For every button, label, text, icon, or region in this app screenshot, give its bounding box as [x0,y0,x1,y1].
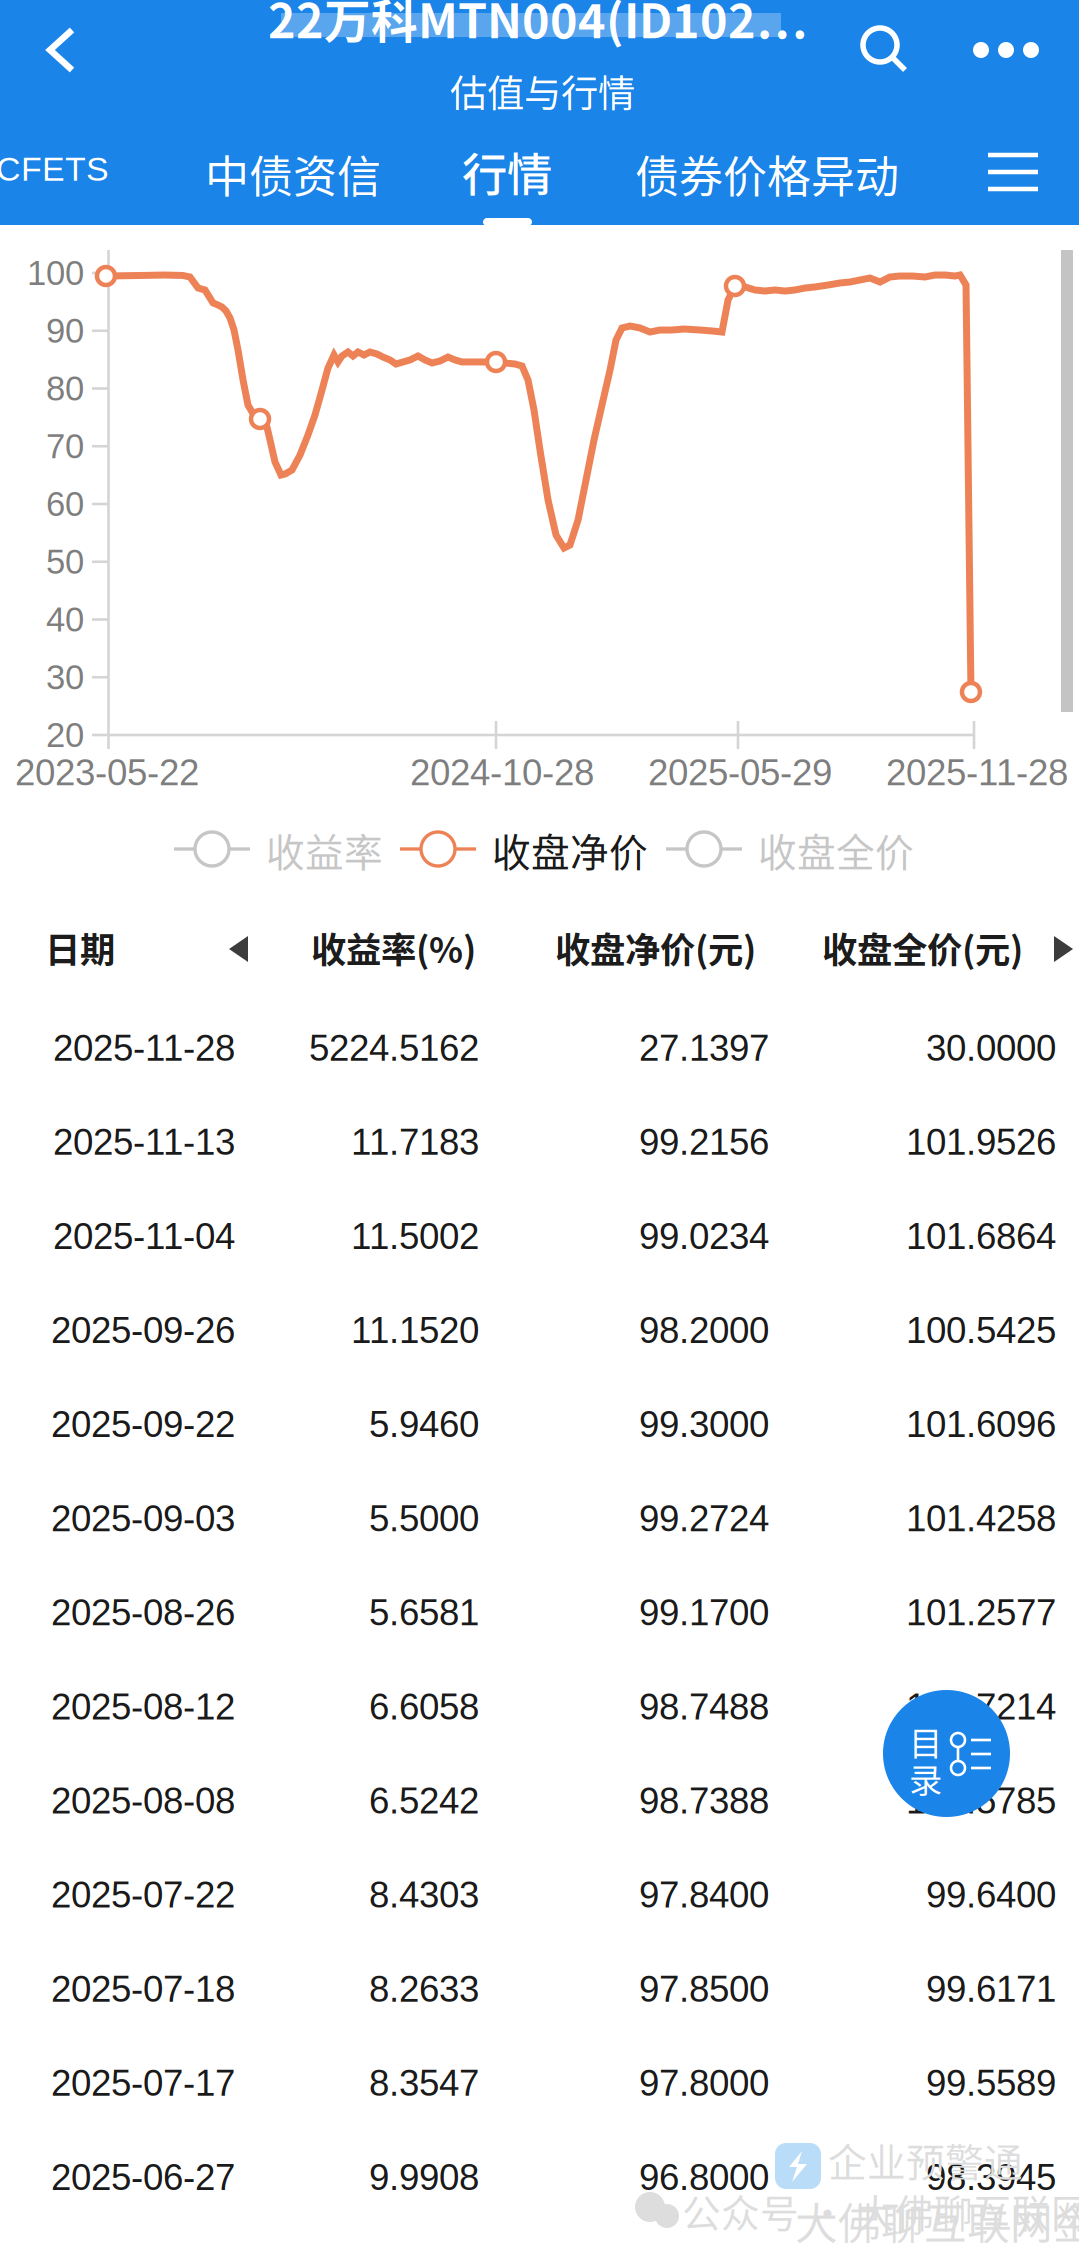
staticText: 2023-05-22 [15,752,199,793]
staticText: 96.8000 [639,2157,769,2198]
staticText: 101.6096 [906,1404,1056,1445]
staticText: 2025-07-17 [51,2063,235,2104]
staticText: 5.5000 [369,1498,479,1539]
staticText: 99.1700 [639,1592,769,1633]
staticText: 99.2156 [639,1122,769,1163]
staticText: 2025-11-13 [53,1122,235,1163]
staticText: 99.3000 [639,1404,769,1445]
staticText: 录 [909,1754,942,1802]
staticText: 收益率(%) [311,922,476,973]
button[interactable]: 行情 [423,136,593,225]
staticText: 20 [46,716,84,754]
staticText: 5.9460 [369,1404,479,1445]
staticText: 101.2577 [906,1592,1056,1633]
staticText: 2025-09-03 [51,1498,235,1539]
staticText: 2025-08-08 [51,1780,235,1821]
staticText: 2025-05-29 [648,752,832,793]
staticText: 日期 [45,922,115,973]
staticText: 90 [46,311,84,350]
staticText: 中债资信 [205,142,381,206]
staticText: 98.7488 [639,1686,769,1727]
staticText: 收盘净价(元) [555,922,756,973]
staticText: 70 [46,427,84,466]
staticText: 估值与行情 [450,64,635,118]
staticText: 9.9908 [369,2157,479,2198]
staticText: 80 [46,369,84,408]
staticText: 98.2000 [639,1310,769,1351]
button[interactable]: 收盘全价(元) [822,912,1066,984]
button[interactable]: 目录 [883,1690,1010,1817]
staticText: 公众号 · 大佛聊互联网金融 [682,2183,1079,2239]
staticText: 6.5242 [369,1780,479,1821]
staticText: 5224.5162 [309,1027,479,1068]
staticText: 60 [46,485,84,523]
staticText: 11.7183 [351,1122,479,1163]
button[interactable]: 中债资信 [183,136,403,224]
button[interactable]: 更多 [950,0,1062,100]
button[interactable]: 债券价格异动 [611,136,931,224]
staticText: 2025-09-26 [51,1310,235,1351]
button[interactable]: 返回 [2,0,120,100]
staticText: 101.7214 [906,1686,1056,1727]
staticText: 收盘全价 [758,822,914,878]
staticText: 50 [46,542,84,581]
button[interactable]: 日期 [45,912,275,984]
staticText: 收盘净价 [492,822,648,878]
staticText: 2025-11-28 [886,752,1068,793]
button[interactable]: 收盘净价 [400,818,648,880]
staticText: 收益率 [266,822,383,878]
button[interactable]: 收益率(%) [282,912,532,984]
staticText: 101.4258 [906,1498,1056,1539]
staticText: 2025-07-22 [51,1874,235,1915]
staticText: 2025-08-26 [51,1592,235,1633]
staticText: 30.0000 [926,1027,1056,1068]
button[interactable]: 收盘净价(元) [537,912,807,984]
staticText: 101.6864 [906,1216,1056,1257]
staticText: 40 [46,600,84,639]
staticText: 11.5002 [351,1216,479,1257]
button[interactable]: 搜索 [833,0,937,100]
staticText: 企业预警通 [828,2132,1023,2188]
staticText: 11.1520 [351,1310,479,1351]
staticText: 大佛聊互联网金融 [795,2190,1079,2245]
staticText: 97.8500 [639,1968,769,2009]
button[interactable]: 收盘全价 [666,818,914,880]
staticText: 27.1397 [639,1027,769,1068]
staticText: 98.7388 [639,1780,769,1821]
button[interactable]: 收益率 [174,818,384,880]
staticText: 2025-09-22 [51,1404,235,1445]
staticText: 99.6171 [926,1968,1056,2009]
staticText: 101.9526 [906,1122,1056,1163]
button[interactable]: CFETS [0,136,161,224]
staticText: CFETS [0,150,109,188]
staticText: 2025-11-04 [53,1216,235,1257]
staticText: 99.6400 [926,1874,1056,1915]
staticText: 99.5589 [926,2063,1056,2104]
staticText: 99.2724 [639,1498,769,1539]
staticText: 6.6058 [369,1686,479,1727]
staticText: 2024-10-28 [410,752,594,793]
staticText: 8.2633 [369,1968,479,2009]
staticText: 2025-08-12 [51,1686,235,1727]
button[interactable]: 菜单 [954,128,1072,216]
staticText: 101.5785 [906,1780,1056,1821]
staticText: 8.4303 [369,1874,479,1915]
staticText: 100 [27,254,84,292]
staticText: 目 [909,1717,942,1765]
staticText: 2025-07-18 [51,1968,235,2009]
staticText: 2025-11-28 [53,1027,235,1068]
staticText: 97.8000 [639,2063,769,2104]
staticText: 8.3547 [369,2063,479,2104]
staticText: 98.3945 [926,2157,1056,2198]
staticText: 97.8400 [639,1874,769,1915]
staticText: 99.0234 [639,1216,769,1257]
staticText: 收盘全价(元) [822,922,1023,973]
staticText: 2025-06-27 [51,2157,235,2198]
staticText: 30 [46,658,84,697]
staticText: 100.5425 [906,1310,1056,1351]
staticText: 22万科MTN004(ID102… [268,0,807,52]
staticText: 债券价格异动 [635,142,899,206]
staticText: 行情 [462,139,552,205]
staticText: 5.6581 [369,1592,479,1633]
